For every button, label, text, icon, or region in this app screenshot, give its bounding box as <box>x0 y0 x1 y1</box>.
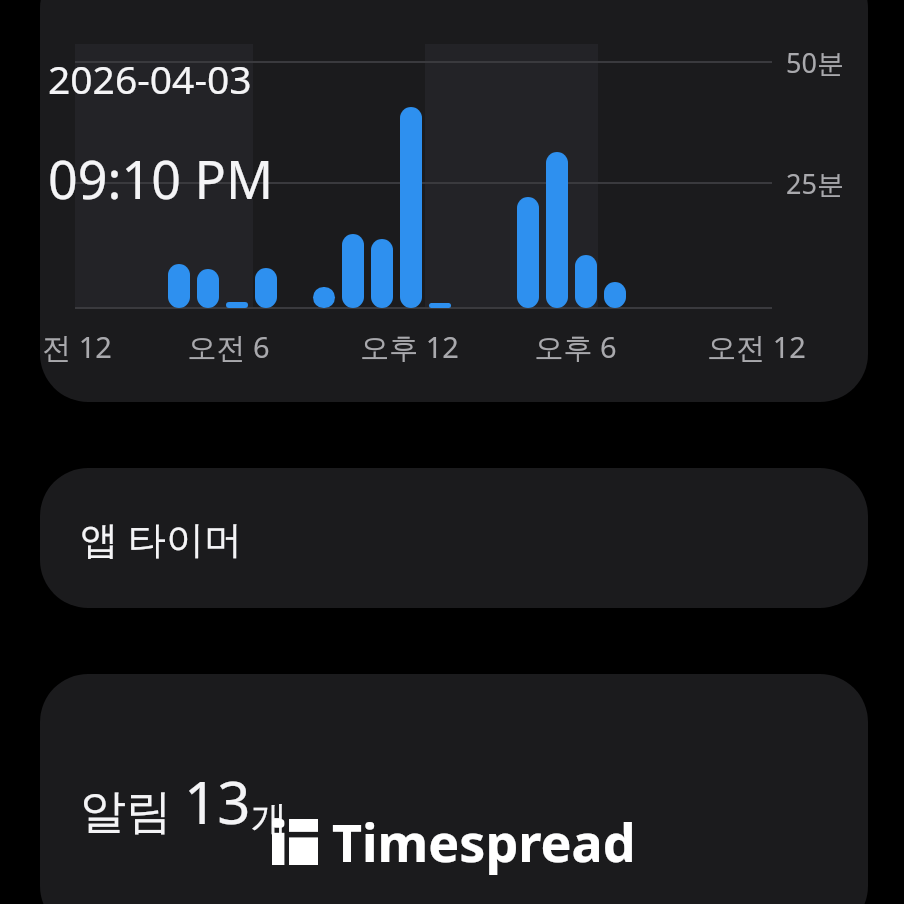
staticText: 50분 <box>786 44 844 81</box>
staticText: 09:10 PM <box>48 143 274 214</box>
staticText: Timespread <box>332 806 636 877</box>
button[interactable]: 앱 타이머 <box>40 468 868 608</box>
staticText: 알림 <box>80 778 184 841</box>
button[interactable]: 알림 <box>40 674 868 904</box>
staticText: 오전 12 <box>40 327 112 367</box>
button[interactable]: 50분 <box>40 0 868 402</box>
staticText: 오전 12 <box>707 327 806 367</box>
staticText: 13 <box>184 762 251 841</box>
staticText: 오전 6 <box>187 327 270 367</box>
staticText: 2026-04-03 <box>48 52 252 105</box>
staticText: 앱 타이머 <box>80 512 242 564</box>
other: Timespread logo <box>272 819 318 865</box>
staticText: 오후 6 <box>534 327 617 367</box>
staticText: 25분 <box>786 165 844 202</box>
staticText: 오후 12 <box>360 327 459 367</box>
staticText: 개 <box>251 796 287 841</box>
